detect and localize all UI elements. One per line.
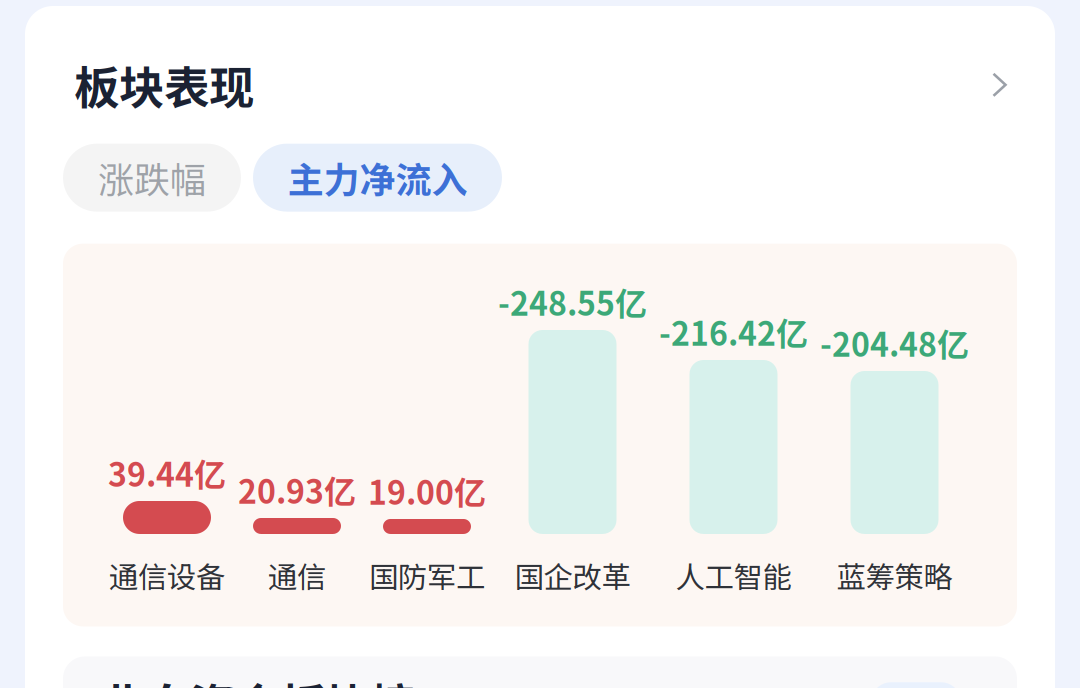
staticText: -204.48亿 [820, 320, 969, 366]
staticText: 蓝筹策略 [836, 554, 952, 596]
button[interactable]: 北向资金板块榜 [25, 626, 1055, 688]
button[interactable]: 涨跌幅 [63, 144, 241, 212]
staticText: 通信设备 [109, 554, 225, 596]
button[interactable]: 主力净流入 [253, 144, 502, 212]
staticText: -216.42亿 [659, 309, 808, 355]
staticText: 通信 [268, 554, 326, 596]
staticText: 39.44亿 [108, 450, 226, 496]
staticText: 19.00亿 [368, 468, 486, 514]
staticText: 涨跌幅 [98, 152, 206, 204]
staticText: 北向资金板块榜 [100, 669, 415, 688]
staticText: 板块表现 [74, 52, 254, 118]
staticText: -248.55亿 [498, 279, 647, 325]
button[interactable]: 查看板块表现详情 [992, 72, 1007, 97]
staticText: 国企改革 [514, 554, 630, 596]
staticText: 主力净流入 [287, 152, 467, 204]
staticText: 20.93亿 [238, 467, 356, 513]
staticText: 国防军工 [369, 554, 485, 596]
staticText: 人工智能 [675, 554, 791, 596]
staticText: 最近一周 [860, 682, 972, 688]
